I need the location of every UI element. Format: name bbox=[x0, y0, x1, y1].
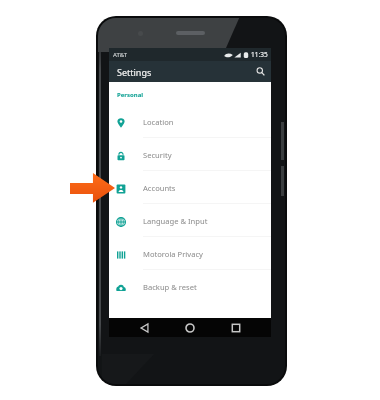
staticText: Settings bbox=[117, 66, 152, 78]
button[interactable]: Motorola Privacy bbox=[109, 237, 271, 270]
staticText: Accounts bbox=[143, 183, 176, 193]
button[interactable]: Search bbox=[253, 64, 268, 79]
button[interactable]: Back bbox=[131, 318, 157, 337]
staticText: Motorola Privacy bbox=[143, 249, 203, 259]
staticText: Personal bbox=[117, 91, 144, 99]
button[interactable]: Accounts bbox=[109, 171, 271, 204]
staticText: AT&T bbox=[113, 51, 127, 59]
staticText: 11:35 bbox=[251, 50, 268, 59]
button[interactable]: Recent apps bbox=[223, 318, 249, 337]
staticText: Language & Input bbox=[143, 216, 208, 226]
button[interactable]: Location bbox=[109, 105, 271, 138]
staticText: Backup & reset bbox=[143, 282, 197, 292]
button[interactable]: Backup & reset bbox=[109, 270, 271, 303]
button[interactable]: Language & Input bbox=[109, 204, 271, 237]
button[interactable]: Security bbox=[109, 138, 271, 171]
staticText: Location bbox=[143, 117, 174, 127]
button[interactable]: Home bbox=[177, 318, 203, 337]
staticText: Security bbox=[143, 150, 172, 160]
